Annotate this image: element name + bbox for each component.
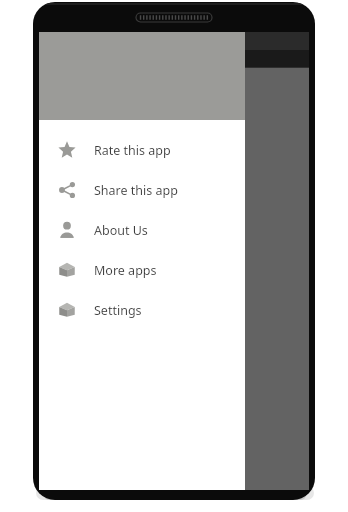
button[interactable]: About Us <box>39 210 245 250</box>
button[interactable]: Settings <box>39 290 245 330</box>
staticText: Settings <box>94 302 142 319</box>
staticText: About Us <box>94 222 148 239</box>
button[interactable]: Share this app <box>39 170 245 210</box>
staticText: Share this app <box>94 182 178 199</box>
button[interactable]: More apps <box>39 250 245 290</box>
staticText: Rate this app <box>94 142 171 159</box>
button[interactable]: Rate this app <box>39 130 245 170</box>
staticText: More apps <box>94 262 157 279</box>
